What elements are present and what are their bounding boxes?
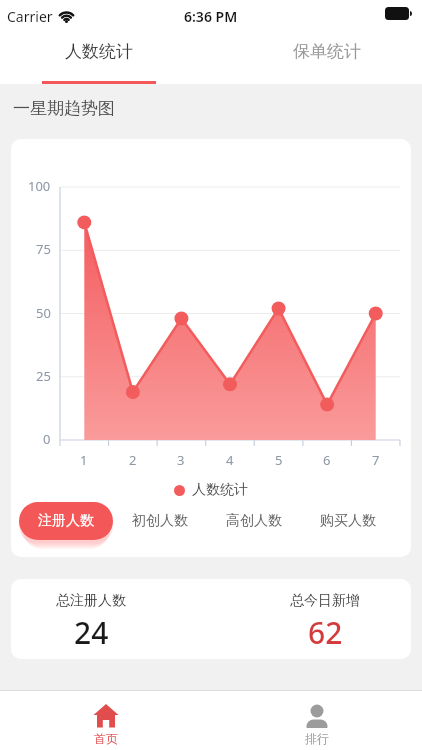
staticText: 排行: [305, 731, 329, 746]
button[interactable]: 总今日新增: [265, 579, 385, 659]
button[interactable]: 高创人数: [207, 502, 301, 540]
button[interactable]: 保单统计: [221, 32, 422, 84]
staticText: Carrier: [7, 7, 53, 26]
staticText: 50: [36, 304, 51, 322]
staticText: 24: [74, 612, 109, 653]
staticText: 3: [177, 451, 185, 469]
staticText: 7: [372, 451, 380, 469]
staticText: 75: [36, 240, 51, 258]
staticText: 4: [226, 451, 234, 469]
staticText: 100: [28, 177, 51, 195]
staticText: 6: [323, 451, 331, 469]
staticText: 首页: [94, 731, 118, 746]
button[interactable]: 首页: [0, 691, 211, 750]
staticText: 0: [43, 430, 51, 448]
staticText: 一星期趋势图: [13, 98, 115, 119]
staticText: 总注册人数: [56, 592, 126, 610]
staticText: 62: [308, 612, 343, 653]
staticText: 5: [275, 451, 283, 469]
button[interactable]: 购买人数: [301, 502, 395, 540]
button[interactable]: 总注册人数: [31, 579, 151, 659]
button[interactable]: 注册人数: [19, 502, 113, 540]
button[interactable]: 人数统计: [0, 32, 204, 84]
staticText: 总今日新增: [290, 592, 360, 610]
staticText: 购买人数: [320, 512, 376, 530]
staticText: 注册人数: [38, 512, 94, 530]
staticText: 人数统计: [192, 481, 248, 499]
staticText: 6:36 PM: [184, 7, 238, 26]
staticText: 保单统计: [293, 41, 361, 62]
staticText: 初创人数: [132, 512, 188, 530]
staticText: 高创人数: [226, 512, 282, 530]
staticText: 25: [36, 367, 51, 385]
staticText: 人数统计: [65, 41, 133, 62]
staticText: 1: [80, 451, 88, 469]
staticText: 2: [129, 451, 137, 469]
button[interactable]: 初创人数: [113, 502, 207, 540]
button[interactable]: 排行: [211, 691, 422, 750]
